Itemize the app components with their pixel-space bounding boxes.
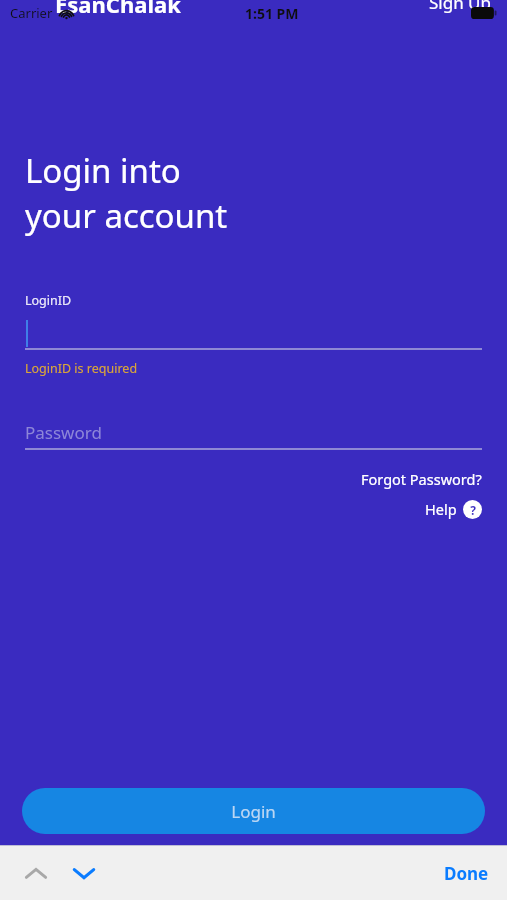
- staticText: Done: [444, 862, 489, 885]
- button[interactable]: Login: [22, 788, 485, 834]
- button[interactable]: Next field: [62, 851, 106, 895]
- staticText: Help: [425, 499, 457, 519]
- staticText: LoginID: [25, 292, 72, 309]
- other: Help: [463, 500, 482, 519]
- button[interactable]: Done: [444, 862, 489, 885]
- staticText: Forgot Password?: [361, 469, 482, 489]
- button[interactable]: Sign Up: [429, 0, 491, 14]
- staticText: 1:51 PM: [245, 4, 299, 23]
- button[interactable]: [25, 318, 482, 348]
- button[interactable]: Help: [425, 499, 482, 519]
- staticText: LoginID is required: [25, 360, 138, 377]
- staticText: ?: [470, 502, 476, 518]
- staticText: your account: [25, 193, 228, 238]
- staticText: Carrier: [10, 4, 53, 22]
- button[interactable]: Forgot Password?: [361, 469, 482, 489]
- staticText: Login: [231, 800, 276, 823]
- button[interactable]: Password: [25, 416, 482, 448]
- button[interactable]: Previous field: [14, 851, 58, 895]
- button[interactable]: EsanChalak: [55, 0, 181, 15]
- staticText: Login into: [25, 148, 181, 193]
- staticText: Password: [25, 421, 102, 444]
